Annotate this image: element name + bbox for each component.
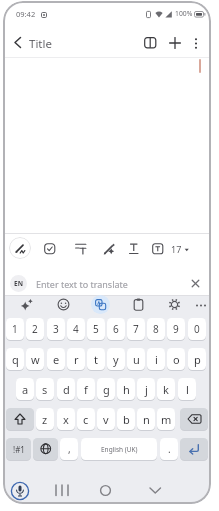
staticText: 7 xyxy=(133,322,139,336)
button[interactable] xyxy=(6,408,34,430)
staticText: 8 xyxy=(153,322,159,336)
button[interactable]: g xyxy=(97,378,115,400)
button[interactable]: e xyxy=(47,348,65,370)
button[interactable]: x xyxy=(57,408,75,430)
staticText: f xyxy=(84,382,88,397)
button[interactable]: i xyxy=(147,348,165,370)
button[interactable]: 1 xyxy=(6,318,24,340)
button[interactable]: !#1 xyxy=(6,438,31,460)
button[interactable] xyxy=(103,243,115,255)
staticText: 100% xyxy=(175,9,193,18)
button[interactable]: , xyxy=(60,438,78,460)
staticText: Title xyxy=(29,36,52,52)
button[interactable]: p xyxy=(188,348,206,370)
button[interactable]: z xyxy=(36,408,54,430)
button[interactable] xyxy=(195,303,207,308)
button[interactable]: j xyxy=(137,378,155,400)
staticText: c xyxy=(83,412,89,427)
button[interactable] xyxy=(57,298,70,311)
button[interactable]: v xyxy=(97,408,115,430)
staticText: g xyxy=(103,382,110,397)
staticText: 6 xyxy=(113,322,119,336)
button[interactable]: c xyxy=(77,408,95,430)
button[interactable]: EN xyxy=(10,275,27,292)
staticText: p xyxy=(194,352,201,367)
button[interactable]: k xyxy=(157,378,175,400)
button[interactable]: 7 xyxy=(127,318,145,340)
button[interactable] xyxy=(168,298,181,311)
button[interactable] xyxy=(20,298,34,312)
staticText: k xyxy=(163,382,169,397)
button[interactable] xyxy=(91,295,110,314)
staticText: e xyxy=(53,352,60,367)
staticText: . xyxy=(168,442,171,456)
button[interactable]: q xyxy=(6,348,24,370)
button[interactable]: 5 xyxy=(87,318,105,340)
button[interactable]: 0 xyxy=(188,318,206,340)
button[interactable] xyxy=(54,484,70,497)
staticText: 1 xyxy=(12,322,18,336)
staticText: English (UK) xyxy=(101,445,138,454)
button[interactable] xyxy=(128,243,140,255)
button[interactable] xyxy=(193,37,199,50)
button[interactable]: 8 xyxy=(147,318,165,340)
staticText: n xyxy=(143,412,150,427)
button[interactable]: d xyxy=(57,378,75,400)
button[interactable]: r xyxy=(67,348,85,370)
button[interactable]: 9 xyxy=(167,318,185,340)
button[interactable]: b xyxy=(117,408,135,430)
button[interactable] xyxy=(180,438,208,460)
staticText: b xyxy=(123,412,130,427)
staticText: 4 xyxy=(73,322,79,336)
button[interactable] xyxy=(169,37,181,49)
button[interactable] xyxy=(13,36,23,49)
button[interactable] xyxy=(191,279,200,288)
button[interactable]: t xyxy=(87,348,105,370)
staticText: r xyxy=(74,352,79,367)
button[interactable]: w xyxy=(26,348,44,370)
staticText: d xyxy=(63,382,70,397)
button[interactable] xyxy=(10,481,30,501)
button[interactable] xyxy=(149,487,162,495)
button[interactable]: 3 xyxy=(47,318,65,340)
button[interactable] xyxy=(100,485,111,496)
button[interactable] xyxy=(33,438,58,460)
button[interactable] xyxy=(75,243,87,255)
button[interactable]: u xyxy=(127,348,145,370)
button[interactable]: a xyxy=(16,378,34,400)
staticText: h xyxy=(123,382,130,397)
button[interactable]: n xyxy=(137,408,155,430)
button[interactable]: f xyxy=(77,378,95,400)
staticText: m xyxy=(161,412,172,427)
staticText: q xyxy=(12,352,19,367)
button[interactable]: h xyxy=(117,378,135,400)
staticText: Enter text to translate xyxy=(36,278,128,290)
staticText: 3 xyxy=(53,322,59,336)
staticText: x xyxy=(63,412,69,427)
button[interactable]: . xyxy=(160,438,178,460)
staticText: 5 xyxy=(93,322,99,336)
button[interactable]: 2 xyxy=(26,318,44,340)
staticText: 0 xyxy=(194,322,200,336)
button[interactable]: 6 xyxy=(107,318,125,340)
button[interactable]: m xyxy=(157,408,175,430)
button[interactable]: English (UK) xyxy=(81,438,157,460)
button[interactable] xyxy=(152,243,164,255)
button[interactable]: 4 xyxy=(67,318,85,340)
button[interactable]: y xyxy=(107,348,125,370)
button[interactable]: l xyxy=(178,378,196,400)
button[interactable]: s xyxy=(36,378,54,400)
button[interactable]: o xyxy=(167,348,185,370)
button[interactable]: 17 xyxy=(170,242,193,256)
button[interactable] xyxy=(44,243,56,255)
staticText: !#1 xyxy=(13,444,25,455)
staticText: l xyxy=(186,382,189,397)
staticText: 2 xyxy=(32,322,38,336)
button[interactable] xyxy=(180,408,208,430)
button[interactable] xyxy=(144,37,157,49)
staticText: u xyxy=(133,352,140,367)
button[interactable] xyxy=(9,237,31,259)
staticText: v xyxy=(103,412,109,427)
button[interactable] xyxy=(132,298,145,311)
staticText: 9 xyxy=(173,322,179,336)
